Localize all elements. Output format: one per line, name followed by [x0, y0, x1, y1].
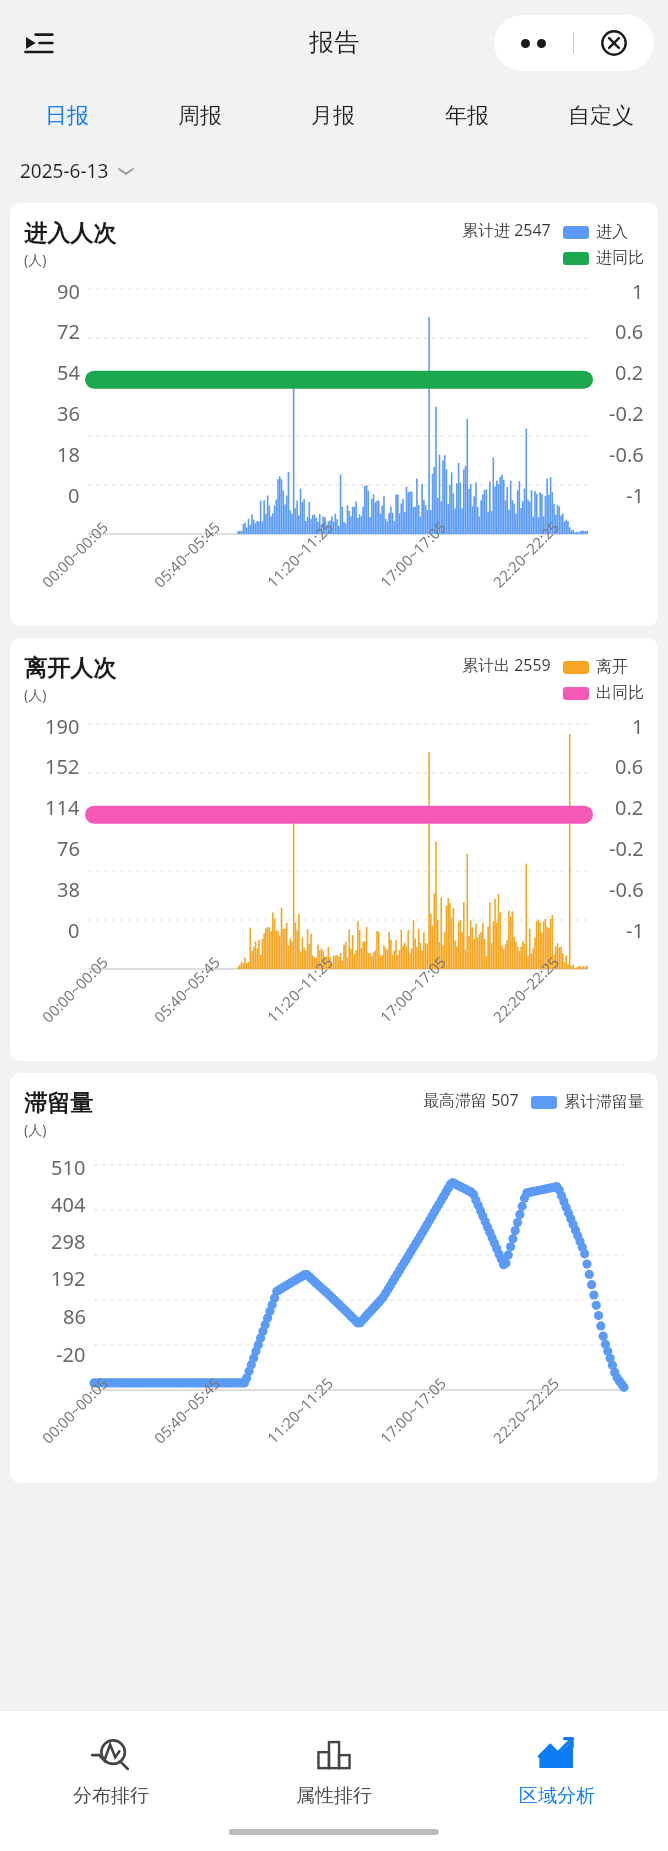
staticText: 114	[45, 794, 80, 821]
staticText: -0.6	[609, 441, 644, 468]
staticText: 离开人次	[24, 654, 116, 683]
staticText: -0.2	[609, 400, 644, 427]
staticText: 日报	[45, 102, 89, 130]
staticText: 36	[57, 400, 80, 427]
staticText: 自定义	[568, 102, 634, 130]
staticText: 月报	[311, 102, 355, 130]
staticText: 05:40~05:45	[149, 951, 224, 1026]
button[interactable]: 属性排行	[222, 1711, 445, 1829]
staticText: 00:00~00:05	[37, 516, 112, 591]
staticText: 0	[68, 482, 80, 509]
staticText: 进入	[596, 222, 628, 242]
staticText: 滞留量	[24, 1089, 93, 1118]
staticText: -0.6	[609, 876, 644, 903]
button[interactable]: 区域分析	[445, 1711, 668, 1829]
staticText: 离开	[596, 657, 628, 677]
staticText: 累计滞留量	[564, 1092, 644, 1112]
staticText: 38	[57, 876, 80, 903]
button[interactable]: 滞留量	[10, 1073, 658, 1483]
button[interactable]: More	[494, 15, 573, 71]
button[interactable]: 年报	[400, 85, 534, 147]
staticText: 0	[68, 917, 80, 944]
staticText: 298	[51, 1228, 86, 1255]
staticText: -1	[626, 482, 644, 509]
staticText: 属性排行	[296, 1784, 372, 1808]
staticText: 出同比	[596, 683, 644, 703]
staticText: 190	[45, 713, 80, 740]
staticText: (人)	[24, 1120, 47, 1139]
staticText: 05:40~05:45	[149, 1372, 224, 1447]
staticText: 17:00~17:05	[375, 951, 450, 1026]
staticText: 0.6	[615, 318, 644, 345]
staticText: 11:20~11:25	[262, 951, 337, 1026]
staticText: 86	[63, 1303, 86, 1330]
staticText: 22:20~22:25	[488, 951, 563, 1026]
button[interactable]: 月报	[266, 85, 400, 147]
staticText: 进同比	[596, 248, 644, 268]
staticText: 17:00~17:05	[375, 1372, 450, 1447]
button[interactable]: 2025-6-13	[20, 147, 668, 195]
staticText: 18	[57, 441, 80, 468]
staticText: 周报	[178, 102, 222, 130]
staticText: 510	[51, 1154, 86, 1181]
staticText: -1	[626, 917, 644, 944]
staticText: 17:00~17:05	[375, 516, 450, 591]
staticText: 1	[632, 713, 644, 740]
staticText: 累计出 2559	[462, 654, 551, 676]
staticText: 152	[45, 753, 80, 780]
button[interactable]: 周报	[133, 85, 266, 147]
button[interactable]: 自定义	[534, 85, 668, 147]
staticText: 22:20~22:25	[488, 516, 563, 591]
staticText: 年报	[445, 102, 489, 130]
button[interactable]: 进入人次	[10, 203, 658, 626]
staticText: 进入人次	[24, 219, 116, 248]
staticText: 90	[57, 278, 80, 305]
button[interactable]: 离开人次	[10, 638, 658, 1061]
staticText: 00:00~00:05	[37, 1372, 112, 1447]
staticText: 2025-6-13	[20, 158, 109, 184]
staticText: 0.2	[615, 359, 644, 386]
staticText: 192	[51, 1265, 86, 1292]
staticText: -0.2	[609, 835, 644, 862]
staticText: 11:20~11:25	[262, 516, 337, 591]
staticText: 404	[51, 1191, 86, 1218]
button[interactable]: 分布排行	[0, 1711, 222, 1829]
staticText: (人)	[24, 250, 47, 269]
staticText: 分布排行	[73, 1784, 149, 1808]
staticText: 1	[632, 278, 644, 305]
button[interactable]: 日报	[0, 85, 133, 147]
staticText: 累计进 2547	[462, 219, 551, 241]
staticText: 区域分析	[519, 1784, 595, 1808]
staticText: 0.2	[615, 794, 644, 821]
staticText: 最高滞留 507	[423, 1089, 519, 1111]
staticText: 00:00~00:05	[37, 951, 112, 1026]
staticText: (人)	[24, 685, 47, 704]
staticText: 05:40~05:45	[149, 516, 224, 591]
button[interactable]: Close	[574, 15, 654, 71]
button[interactable]: Menu	[14, 19, 62, 67]
staticText: 22:20~22:25	[488, 1372, 563, 1447]
staticText: 54	[57, 359, 80, 386]
staticText: 76	[57, 835, 80, 862]
staticText: 11:20~11:25	[262, 1372, 337, 1447]
staticText: 0.6	[615, 753, 644, 780]
staticText: -20	[56, 1341, 86, 1368]
staticText: 72	[57, 318, 80, 345]
staticText: 报告	[309, 27, 359, 58]
